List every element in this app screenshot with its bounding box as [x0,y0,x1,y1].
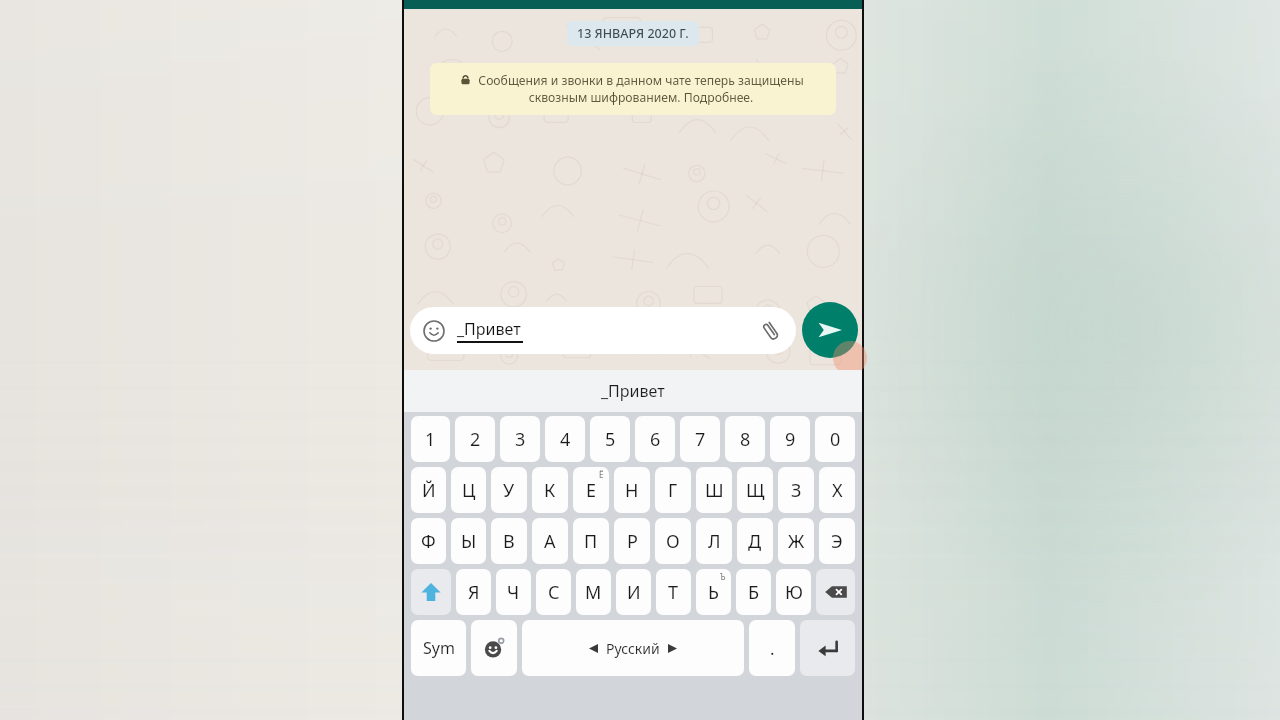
button[interactable]: Ч [496,569,531,615]
button[interactable]: Emoji [410,307,796,354]
staticText: Я [468,580,480,605]
staticText: 4 [560,427,571,452]
button[interactable]: Р [614,518,650,564]
button[interactable]: К [532,467,568,513]
button[interactable]: Сообщения и звонки в данном чате теперь … [430,63,836,115]
button[interactable]: Ж [778,518,814,564]
staticText: 13 ЯНВАРЯ 2020 Г. [577,25,689,42]
button[interactable]: Я [456,569,491,615]
staticText: 3 [515,427,526,452]
staticText: А [544,529,556,554]
staticText: С [548,580,560,605]
staticText: 0 [830,427,841,452]
button[interactable]: Т [656,569,691,615]
staticText: Ь [708,580,719,605]
staticText: Ю [785,580,803,605]
staticText: И [627,580,641,605]
button[interactable]: У [491,467,527,513]
staticText: 9 [785,427,796,452]
button[interactable]: 8 [725,416,765,462]
staticText: П [584,529,598,554]
staticText: Ш [705,478,724,503]
button[interactable]: 3 [500,416,540,462]
button[interactable]: Ц [451,467,486,513]
button[interactable]: 4 [545,416,585,462]
button[interactable]: Sym [411,620,466,676]
staticText: 2 [470,427,481,452]
button[interactable]: Б [736,569,771,615]
staticText: Ч [507,580,520,605]
button[interactable]: В [491,518,527,564]
staticText: 7 [695,427,706,452]
button[interactable]: Ф [411,518,446,564]
button[interactable]: 0 [815,416,855,462]
button[interactable]: 1 [411,416,450,462]
staticText: О [666,529,680,554]
button[interactable]: П [573,518,609,564]
staticText: К [544,478,556,503]
staticText: Й [422,478,436,503]
staticText: Щ [746,478,765,503]
staticText: В [503,529,515,554]
staticText: У [503,478,515,503]
staticText: Т [668,580,679,605]
button[interactable]: Ы [451,518,486,564]
button[interactable]: Д [737,518,773,564]
staticText: Ф [421,529,436,554]
staticText: 8 [740,427,751,452]
button[interactable]: . [749,620,795,676]
other: Emoji [423,320,445,342]
button[interactable]: Щ [737,467,773,513]
staticText: З [791,478,802,503]
staticText: Сообщения и звонки в данном чате теперь … [476,72,806,106]
button[interactable]: Й [411,467,446,513]
button[interactable]: Л [696,518,732,564]
staticText: Э [831,529,843,554]
button[interactable]: Send [802,302,858,358]
other: Attach [760,319,783,342]
button[interactable]: А [532,518,568,564]
staticText: _Привет [457,318,521,340]
button[interactable]: Ь [696,569,731,615]
staticText: Sym [423,637,455,659]
button[interactable]: Э [819,518,855,564]
button[interactable]: Backspace [816,569,855,615]
button[interactable]: Enter [800,620,855,676]
button[interactable]: Е [573,467,609,513]
button[interactable]: Emoji keyboard [471,620,517,676]
button[interactable]: 9 [770,416,810,462]
staticText: 1 [425,427,436,452]
staticText: М [585,580,602,605]
button[interactable]: И [616,569,651,615]
staticText: Ё [599,469,604,480]
button[interactable]: Shift [411,569,451,615]
button[interactable]: Русский [522,620,744,676]
button[interactable]: 13 ЯНВАРЯ 2020 Г. [567,21,699,46]
staticText: Е [586,478,597,503]
staticText: 5 [605,427,616,452]
button[interactable]: Х [819,467,855,513]
staticText: Ы [461,529,477,554]
staticText: _Привет [601,380,665,402]
button[interactable]: Ш [696,467,732,513]
staticText: Н [625,478,639,503]
button[interactable]: З [778,467,814,513]
staticText: Д [748,529,762,554]
staticText: Б [748,580,760,605]
staticText: Ъ [720,571,726,582]
staticText: Р [627,529,638,554]
button[interactable]: Ю [776,569,811,615]
button[interactable]: Н [614,467,650,513]
button[interactable]: 5 [590,416,630,462]
button[interactable]: С [536,569,571,615]
button[interactable]: М [576,569,611,615]
staticText: . [770,637,775,660]
staticText: Х [832,478,843,503]
button[interactable]: 6 [635,416,675,462]
button[interactable]: _Привет [404,370,862,412]
button[interactable]: 7 [680,416,720,462]
button[interactable]: Г [655,467,691,513]
button[interactable]: О [655,518,691,564]
button[interactable]: 2 [455,416,495,462]
staticText: Русский [606,639,660,658]
